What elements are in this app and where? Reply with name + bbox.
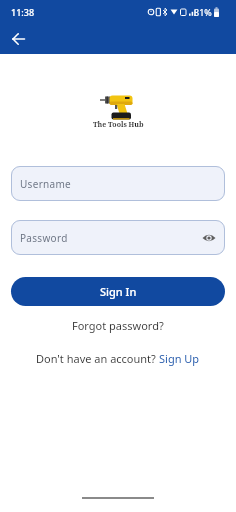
staticText: Username: [20, 177, 72, 191]
staticText: 31%: [194, 6, 212, 18]
staticText: Sign Up: [159, 351, 200, 366]
staticText: Sign In: [100, 284, 137, 299]
staticText: Password: [20, 231, 68, 245]
staticText: 11:38: [11, 6, 35, 18]
staticText: Forgot password?: [72, 318, 164, 333]
staticText: Don't have an account?: [36, 351, 159, 366]
staticText: The Tools Hub: [93, 120, 144, 130]
